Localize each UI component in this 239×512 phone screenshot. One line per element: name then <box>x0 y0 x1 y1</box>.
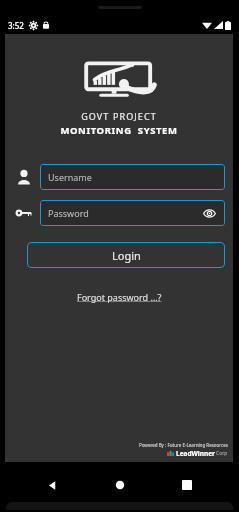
staticText: LeadWinner <box>176 449 215 458</box>
button[interactable]: Home <box>105 470 135 500</box>
staticText: Login <box>112 248 141 263</box>
staticText: 3:52 <box>8 20 24 31</box>
staticText: Username <box>48 171 92 183</box>
staticText: Forgot password …? <box>77 291 162 303</box>
button[interactable]: Login <box>27 242 225 268</box>
button[interactable]: Password <box>40 200 225 226</box>
staticText: MONITORING SYSTEM <box>60 124 178 137</box>
staticText: Password <box>48 207 89 219</box>
button[interactable]: Recent apps <box>172 470 202 500</box>
staticText: Corp <box>216 450 228 457</box>
button[interactable]: Show password <box>201 205 217 221</box>
staticText: Powered By : Future E-Learning Resources <box>139 442 228 448</box>
button[interactable]: Username <box>40 164 225 190</box>
button[interactable]: Forgot password …? <box>71 288 168 306</box>
button[interactable]: Back <box>37 470 67 500</box>
staticText: GOVT PROJECT <box>81 110 157 122</box>
